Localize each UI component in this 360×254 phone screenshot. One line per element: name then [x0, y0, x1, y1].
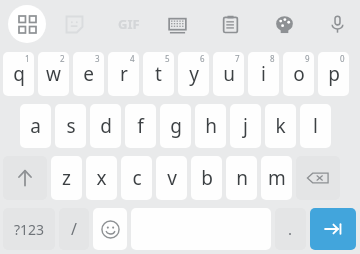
staticText: s — [66, 113, 76, 139]
staticText: n — [236, 165, 248, 191]
staticText: h — [205, 113, 217, 139]
button[interactable]: b — [191, 156, 222, 200]
staticText: m — [268, 165, 286, 191]
button[interactable]: / — [59, 208, 89, 250]
staticText: c — [132, 165, 142, 191]
button[interactable]: GIF — [112, 14, 146, 34]
staticText: p — [328, 61, 340, 87]
staticText: 2 — [60, 53, 65, 64]
button[interactable]: Clipboard — [218, 12, 242, 36]
button[interactable]: v — [156, 156, 187, 200]
button[interactable]: e — [73, 52, 104, 96]
staticText: 9 — [305, 53, 310, 64]
button[interactable]: Theme — [272, 12, 296, 36]
button[interactable]: Voice input — [325, 12, 349, 36]
button[interactable]: g — [160, 104, 191, 148]
staticText: 8 — [270, 53, 275, 64]
button[interactable]: o — [283, 52, 314, 96]
button[interactable]: i — [248, 52, 279, 96]
button[interactable]: s — [55, 104, 86, 148]
button[interactable]: d — [90, 104, 121, 148]
staticText: 4 — [130, 53, 135, 64]
button[interactable]: h — [195, 104, 226, 148]
button[interactable]: j — [230, 104, 261, 148]
button[interactable]: n — [226, 156, 257, 200]
button[interactable]: Apps — [8, 5, 46, 43]
button[interactable]: x — [86, 156, 117, 200]
staticText: o — [293, 61, 305, 87]
button[interactable]: Stickers — [62, 12, 86, 36]
staticText: . — [288, 219, 293, 239]
staticText: u — [223, 61, 235, 87]
button[interactable]: . — [275, 208, 306, 250]
staticText: k — [275, 113, 286, 139]
staticText: i — [261, 61, 266, 87]
button[interactable]: c — [121, 156, 152, 200]
staticText: w — [46, 61, 61, 87]
button[interactable]: f — [125, 104, 156, 148]
button[interactable]: Keyboard — [165, 13, 189, 37]
button[interactable]: Enter — [310, 208, 356, 250]
staticText: ?123 — [14, 220, 45, 239]
staticText: 6 — [200, 53, 205, 64]
staticText: g — [170, 113, 182, 139]
button[interactable]: t — [143, 52, 174, 96]
staticText: q — [13, 61, 25, 87]
staticText: v — [167, 165, 177, 191]
button[interactable]: l — [300, 104, 331, 148]
button[interactable]: w — [38, 52, 69, 96]
staticText: / — [71, 218, 77, 240]
staticText: a — [30, 113, 41, 139]
staticText: j — [243, 113, 248, 139]
button[interactable]: u — [213, 52, 244, 96]
staticText: y — [189, 61, 199, 87]
staticText: 3 — [95, 53, 100, 64]
button[interactable]: k — [265, 104, 296, 148]
button[interactable]: q — [3, 52, 34, 96]
button[interactable]: Shift — [3, 156, 47, 200]
staticText: GIF — [118, 15, 140, 33]
staticText: f — [137, 113, 144, 139]
button[interactable]: r — [108, 52, 139, 96]
staticText: e — [83, 61, 94, 87]
button[interactable]: Backspace — [296, 156, 340, 200]
button[interactable]: m — [261, 156, 292, 200]
staticText: l — [313, 113, 318, 139]
staticText: t — [155, 61, 162, 87]
staticText: 7 — [235, 53, 240, 64]
staticText: 1 — [25, 53, 30, 64]
staticText: z — [62, 165, 71, 191]
staticText: x — [96, 165, 107, 191]
staticText: d — [100, 113, 112, 139]
button[interactable]: y — [178, 52, 209, 96]
button[interactable]: p — [318, 52, 349, 96]
staticText: 0 — [340, 53, 345, 64]
staticText: b — [201, 165, 213, 191]
button[interactable]: ?123 — [3, 208, 55, 250]
button[interactable]: a — [20, 104, 51, 148]
staticText: 5 — [165, 53, 170, 64]
staticText: r — [120, 61, 128, 87]
button[interactable]: Emoji — [93, 208, 127, 250]
button[interactable]: z — [51, 156, 82, 200]
